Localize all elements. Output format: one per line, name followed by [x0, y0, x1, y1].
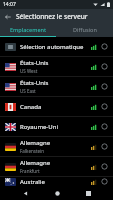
button[interactable]: Emplacement — [0, 23, 56, 36]
button[interactable]: États-Unis — [0, 57, 113, 76]
button[interactable]: États-Unis — [0, 77, 113, 96]
staticText: Sélection automatique — [20, 43, 84, 51]
button[interactable]: Home — [50, 186, 64, 200]
staticText: Allemagne — [20, 139, 51, 147]
staticText: Sélectionnez le serveur — [16, 12, 88, 21]
staticText: US West — [20, 68, 38, 74]
staticText: Frankfurt — [20, 168, 40, 174]
staticText: États-Unis — [20, 59, 49, 67]
button[interactable]: Diffusion — [56, 23, 113, 36]
button[interactable]: Sélection automatique — [0, 37, 113, 56]
staticText: Canada — [20, 103, 42, 111]
button[interactable]: Recents — [81, 186, 95, 200]
button[interactable]: Allemagne — [0, 157, 113, 176]
button[interactable]: Royaume-Uni — [0, 117, 113, 136]
button[interactable]: Back — [18, 186, 32, 200]
staticText: Diffusion — [73, 26, 97, 33]
button[interactable]: Back — [2, 11, 13, 22]
staticText: États-Unis — [20, 79, 49, 87]
staticText: US East — [20, 88, 36, 94]
staticText: Falkenstein — [20, 148, 45, 154]
staticText: Allemagne — [20, 159, 51, 167]
staticText: Royaume-Uni — [20, 123, 58, 131]
button[interactable]: Australie — [0, 177, 113, 186]
staticText: 14:07 — [3, 1, 16, 8]
button[interactable]: Allemagne — [0, 137, 113, 156]
button[interactable]: Canada — [0, 97, 113, 116]
staticText: Emplacement — [10, 26, 47, 33]
staticText: Australie — [20, 178, 45, 186]
